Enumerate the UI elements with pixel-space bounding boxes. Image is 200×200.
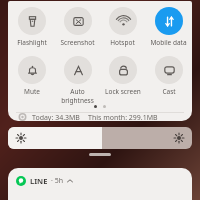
button[interactable]: LINE: [8, 168, 192, 200]
staticText: Mute: [24, 87, 40, 96]
button[interactable]: Hotspot: [100, 4, 145, 47]
button[interactable]: Brightness: [8, 127, 192, 149]
staticText: This month: 299.1MB: [88, 113, 158, 121]
button[interactable]: Mobile data: [146, 4, 191, 47]
button[interactable]: Auto brightness: [55, 53, 100, 105]
staticText: Mobile data: [150, 38, 187, 47]
button[interactable]: Today: 34.3MB: [8, 113, 192, 121]
staticText: Today: 34.3MB: [32, 113, 80, 121]
button[interactable]: Screenshot: [55, 4, 100, 47]
staticText: Screenshot: [60, 38, 95, 47]
button[interactable]: Flashlight: [9, 4, 54, 47]
staticText: Flashlight: [17, 38, 47, 47]
staticText: Auto brightness: [55, 87, 100, 105]
staticText: Cast: [162, 87, 176, 96]
staticText: · 5h: [51, 176, 64, 186]
staticText: Lock screen: [105, 87, 141, 96]
button[interactable]: Cast: [146, 53, 191, 96]
button[interactable]: Mute: [9, 53, 54, 96]
staticText: Hotspot: [110, 38, 135, 47]
button[interactable]: Lock screen: [100, 53, 145, 96]
staticText: LINE: [30, 176, 48, 186]
